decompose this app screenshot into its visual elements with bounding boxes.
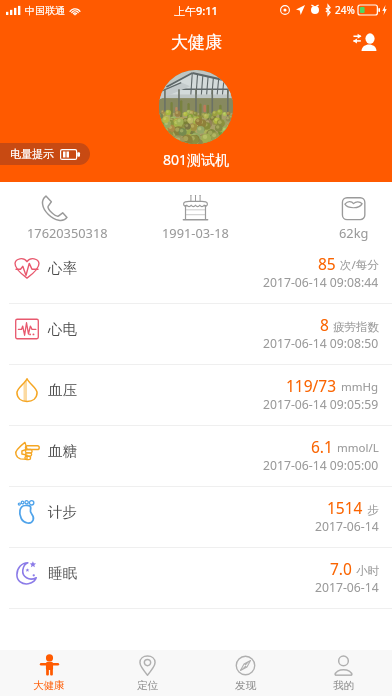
button[interactable]: 我的 [294,650,392,696]
staticText: 7.0 [330,558,352,579]
button[interactable]: 定位 [98,650,196,696]
button[interactable] [159,70,233,144]
staticText: 8 [320,314,329,335]
staticText: 2017-06-14 [315,518,379,535]
button[interactable]: 睡眠 [0,548,392,609]
staticText: 2017-06-14 09:08:50 [263,335,379,352]
staticText: 85 [318,253,336,274]
staticText: 定位 [137,679,158,692]
button[interactable]: 心率 [0,243,392,304]
staticText: 疲劳指数 [333,320,379,334]
button[interactable]: 1991-03-18 [130,184,261,241]
button[interactable]: 62kg [288,184,392,241]
staticText: 1991-03-18 [162,224,229,241]
button[interactable]: 计步 [0,487,392,548]
staticText: 2017-06-14 09:05:59 [263,396,379,413]
staticText: mmol/L [337,440,379,456]
button[interactable]: 血糖 [0,426,392,487]
button[interactable]: 大健康 [0,650,98,696]
staticText: 2017-06-14 09:08:44 [263,274,379,291]
button[interactable]: 电量提示 [0,143,90,165]
button[interactable]: 心电 [0,304,392,365]
staticText: 6.1 [311,436,333,457]
button[interactable]: Switch user [346,24,382,60]
staticText: 步 [367,503,379,517]
staticText: 62kg [339,224,369,241]
staticText: 小时 [356,564,379,578]
button[interactable]: 17620350318 [2,184,132,241]
staticText: 2017-06-14 [315,579,379,596]
staticText: 1514 [327,497,363,518]
staticText: 发现 [235,679,256,692]
staticText: 24% [335,3,355,17]
staticText: 2017-06-14 09:05:00 [263,457,379,474]
staticText: 计步 [48,503,77,521]
staticText: 心电 [48,320,77,338]
staticText: 血糖 [48,442,77,460]
staticText: 大健康 [33,679,65,692]
staticText: mmHg [341,379,379,395]
staticText: 上午9:11 [174,3,218,18]
staticText: 睡眠 [48,564,77,582]
staticText: 中国联通 [25,4,65,17]
staticText: 血压 [48,381,77,399]
staticText: 电量提示 [10,147,54,161]
button[interactable]: 血压 [0,365,392,426]
staticText: 大健康 [171,32,222,53]
staticText: 我的 [333,679,354,692]
staticText: 17620350318 [27,224,108,241]
staticText: 心率 [48,259,77,277]
staticText: 119/73 [286,375,337,396]
staticText: 次/每分 [340,257,379,273]
staticText: 801测试机 [163,150,230,169]
button[interactable]: 发现 [196,650,294,696]
